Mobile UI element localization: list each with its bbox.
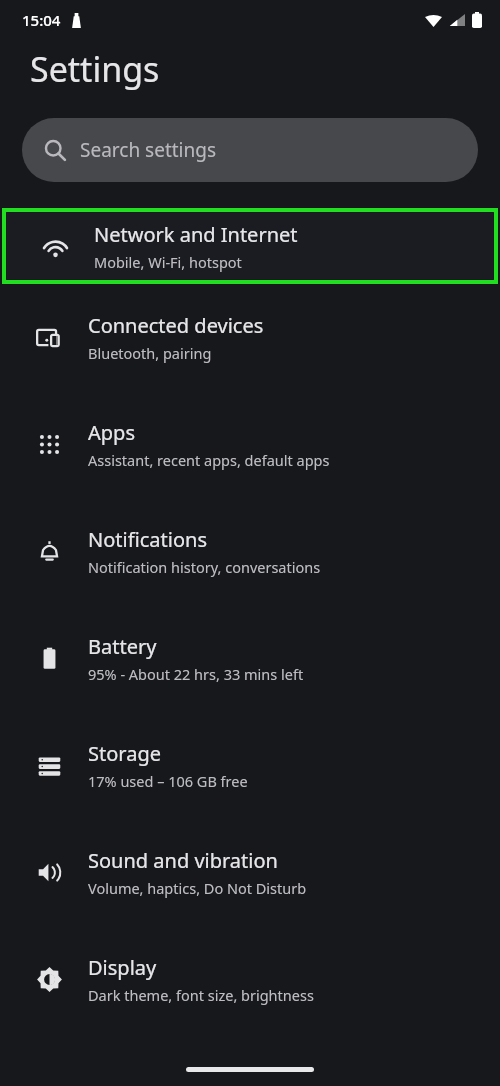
- staticText: Notification history, conversations: [88, 557, 321, 577]
- button[interactable]: Notifications: [0, 498, 500, 605]
- staticText: 15:04: [22, 10, 61, 30]
- button[interactable]: Search settings: [22, 118, 478, 182]
- staticText: Sound and vibration: [88, 847, 278, 874]
- button[interactable]: Connected devices: [0, 284, 500, 391]
- staticText: Network and Internet: [94, 221, 298, 248]
- staticText: 17% used – 106 GB free: [88, 771, 248, 791]
- staticText: 95% - About 22 hrs, 33 mins left: [88, 664, 304, 684]
- staticText: Mobile, Wi-Fi, hotspot: [94, 252, 242, 272]
- button[interactable]: Battery: [0, 605, 500, 712]
- staticText: Settings: [30, 46, 160, 92]
- button[interactable]: Apps: [0, 391, 500, 498]
- button[interactable]: Network and Internet: [6, 212, 494, 280]
- staticText: Notifications: [88, 526, 207, 553]
- staticText: Search settings: [80, 137, 217, 163]
- staticText: Display: [88, 954, 157, 981]
- staticText: Bluetooth, pairing: [88, 343, 212, 363]
- staticText: Battery: [88, 633, 157, 660]
- staticText: Storage: [88, 740, 161, 767]
- staticText: Dark theme, font size, brightness: [88, 985, 314, 1005]
- staticText: Apps: [88, 419, 135, 446]
- button[interactable]: Sound and vibration: [0, 819, 500, 926]
- staticText: Assistant, recent apps, default apps: [88, 450, 330, 470]
- staticText: Volume, haptics, Do Not Disturb: [88, 878, 307, 898]
- button[interactable]: Storage: [0, 712, 500, 819]
- staticText: Connected devices: [88, 312, 264, 339]
- button[interactable]: Display: [0, 926, 500, 1033]
